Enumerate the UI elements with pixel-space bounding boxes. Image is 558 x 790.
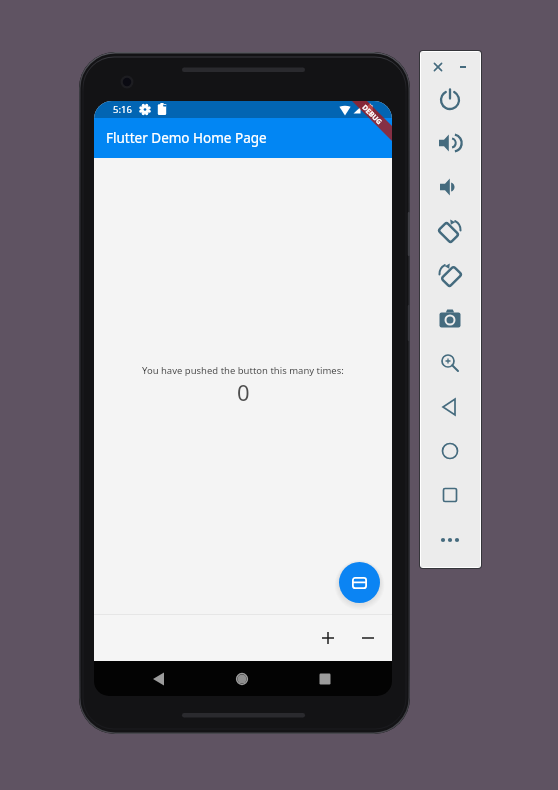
staticText: You have pushed the button this many tim…	[142, 364, 344, 377]
staticText: 5:16	[113, 103, 132, 116]
button[interactable]: Zoom	[435, 348, 465, 378]
button[interactable]: More	[435, 525, 465, 555]
staticText: 0	[237, 377, 250, 407]
staticText: DEBUG	[360, 103, 384, 127]
button[interactable]: Add card	[339, 562, 380, 603]
button[interactable]: Home	[435, 436, 465, 466]
button[interactable]: Close	[432, 61, 446, 75]
button[interactable]: Volume down	[435, 172, 465, 202]
button[interactable]: Back	[435, 392, 465, 422]
button[interactable]: Rotate left	[435, 216, 465, 246]
button[interactable]: Screenshot	[435, 304, 465, 334]
staticText: Flutter Demo Home Page	[106, 129, 267, 147]
button[interactable]: Rotate right	[435, 260, 465, 290]
button[interactable]: Minimize	[457, 61, 471, 75]
button[interactable]: Increment	[314, 624, 342, 652]
button[interactable]: Volume up	[435, 128, 465, 158]
button[interactable]: Overview	[435, 480, 465, 510]
button[interactable]: Power	[435, 84, 465, 114]
button[interactable]: Decrement	[354, 624, 382, 652]
